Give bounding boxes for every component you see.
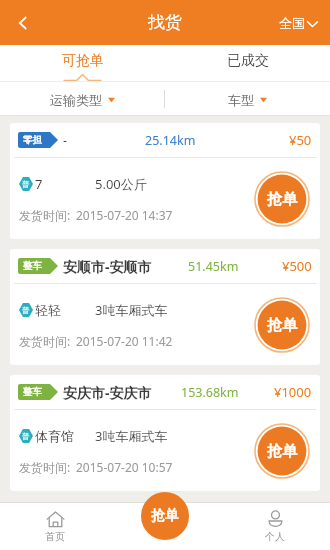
staticText: 抢单 <box>267 190 297 209</box>
staticText: 3吨车厢式车 <box>95 301 168 319</box>
button[interactable]: 全国 <box>275 9 324 37</box>
staticText: 3吨车厢式车 <box>95 427 168 445</box>
staticText: 2015-07-20 10:57 <box>76 459 173 475</box>
staticText: 安顺市-安顺市 <box>63 257 152 276</box>
staticText: 发货时间: <box>19 333 71 349</box>
button[interactable]: 零担 <box>10 123 320 239</box>
button[interactable]: 抢单 <box>254 297 310 353</box>
staticText: 普 <box>22 180 30 189</box>
staticText: 车型 <box>228 92 254 108</box>
staticText: 零担 <box>23 134 42 146</box>
staticText: 5.00公斤 <box>95 175 147 193</box>
staticText: 轻轻 <box>35 302 61 318</box>
button[interactable]: Back <box>0 0 45 45</box>
staticText: 整车 <box>23 260 42 272</box>
staticText: 抢单 <box>151 507 179 525</box>
staticText: 抢单 <box>267 442 297 461</box>
button[interactable]: 车型 <box>165 83 330 116</box>
staticText: 可抢单 <box>62 52 104 70</box>
staticText: ¥500 <box>282 257 312 275</box>
button[interactable]: 整车 <box>10 249 320 365</box>
button[interactable]: 已成交 <box>165 45 330 82</box>
staticText: 抢单 <box>267 316 297 335</box>
staticText: 运输类型 <box>50 92 102 108</box>
staticText: 已成交 <box>227 52 269 70</box>
staticText: - <box>63 132 67 148</box>
staticText: ¥50 <box>289 131 312 149</box>
staticText: ¥1000 <box>274 383 312 401</box>
staticText: 153.68km <box>181 384 239 401</box>
staticText: 51.45km <box>188 258 239 275</box>
staticText: 7 <box>35 175 43 193</box>
button[interactable]: 首页 <box>0 502 110 550</box>
button[interactable]: 可抢单 <box>0 45 165 82</box>
button[interactable]: 抢单 <box>141 492 189 540</box>
staticText: 整车 <box>23 386 42 398</box>
staticText: 首页 <box>45 530 65 543</box>
staticText: 个人 <box>265 530 285 543</box>
staticText: 2015-07-20 14:37 <box>76 207 173 223</box>
staticText: 25.14km <box>145 132 196 149</box>
button[interactable]: 整车 <box>10 375 320 491</box>
staticText: 体育馆 <box>35 428 74 444</box>
button[interactable]: 个人 <box>220 502 330 550</box>
staticText: 全国 <box>279 15 305 31</box>
button[interactable]: 抢单 <box>254 171 310 227</box>
button[interactable]: 运输类型 <box>0 83 164 116</box>
staticText: 普 <box>22 432 30 441</box>
button[interactable]: 抢单 <box>254 423 310 479</box>
staticText: 2015-07-20 11:42 <box>76 333 173 349</box>
staticText: 普 <box>22 306 30 315</box>
staticText: 发货时间: <box>19 459 71 475</box>
staticText: 找货 <box>148 12 182 33</box>
staticText: 发货时间: <box>19 207 71 223</box>
staticText: 安庆市-安庆市 <box>63 383 152 402</box>
